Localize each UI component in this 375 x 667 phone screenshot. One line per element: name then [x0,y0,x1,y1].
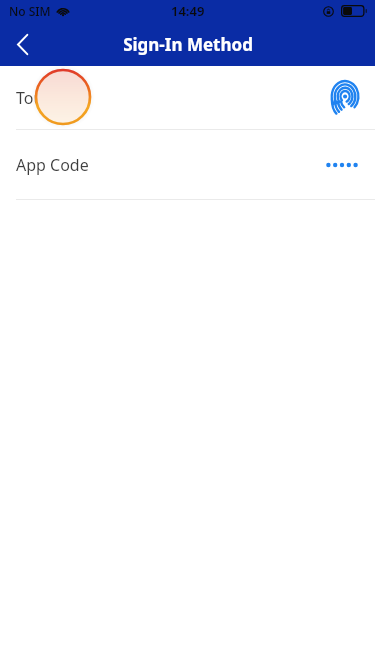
button[interactable]: Touch ID [0,66,375,129]
staticText: Sign-In Method [123,33,253,56]
staticText: App Code [16,154,89,176]
button[interactable]: App Code [0,130,375,199]
staticText: Touch ID [16,87,83,109]
staticText: No SIM [9,3,51,19]
staticText: 14:49 [171,2,205,20]
button[interactable]: Back [0,22,44,66]
